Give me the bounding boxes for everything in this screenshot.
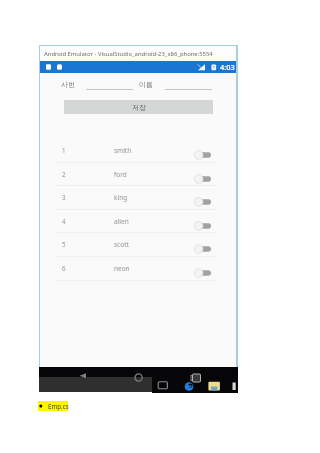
staticText: 5 — [62, 240, 66, 248]
button[interactable]: 저장 — [64, 100, 213, 114]
staticText: allen — [114, 217, 129, 226]
staticText: 4:03 — [220, 62, 235, 72]
button[interactable]: 6 — [40, 256, 236, 280]
staticText: smith — [114, 146, 132, 155]
button[interactable]: 3 — [40, 185, 236, 209]
button[interactable]: Toggle — [194, 244, 212, 254]
staticText: ford — [114, 170, 127, 179]
staticText: neon — [114, 264, 130, 273]
button[interactable]: Toggle — [194, 174, 212, 184]
button[interactable]: Toggle — [194, 221, 212, 231]
staticText: 3 — [62, 193, 66, 201]
staticText: 6 — [62, 264, 66, 272]
staticText: 2 — [62, 170, 66, 178]
staticText: Emp.cs — [48, 402, 69, 410]
button[interactable]: Emp.cs — [38, 401, 68, 411]
staticText: Android Emulator - VisualStudio_android-… — [44, 50, 213, 58]
button[interactable]: 2 — [40, 162, 236, 186]
staticText: 4 — [62, 217, 66, 225]
staticText: 1 — [62, 146, 66, 154]
button[interactable]: 5 — [40, 232, 236, 256]
button[interactable]: Toggle — [194, 197, 212, 207]
button[interactable]: Toggle — [194, 268, 212, 278]
button[interactable]: 1 — [40, 138, 236, 162]
staticText: 이름 — [139, 80, 153, 89]
staticText: 사번 — [61, 80, 75, 89]
staticText: 저장 — [132, 103, 146, 112]
button[interactable]: 4 — [40, 209, 236, 233]
staticText: scott — [114, 240, 129, 249]
staticText: king — [114, 193, 128, 202]
button[interactable]: Toggle — [194, 150, 212, 160]
